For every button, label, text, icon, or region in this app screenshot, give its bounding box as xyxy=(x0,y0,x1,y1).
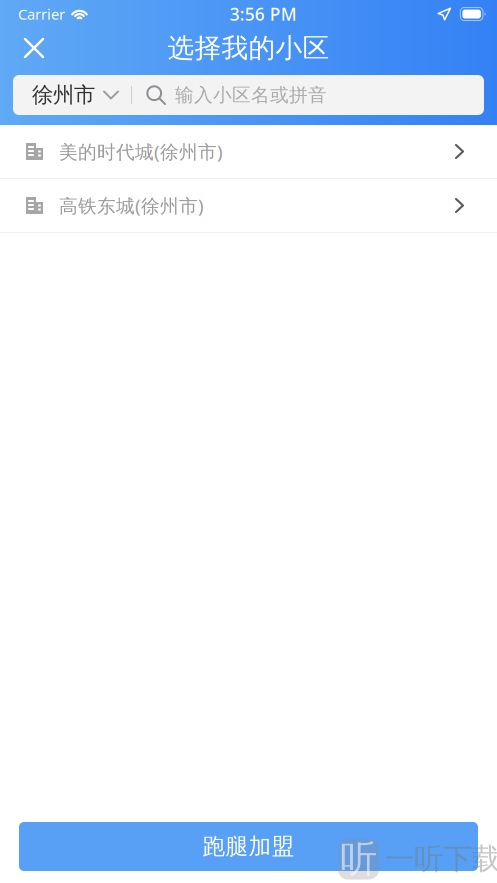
button[interactable]: 美的时代城(徐州市) xyxy=(0,125,497,179)
staticText: Carrier xyxy=(18,4,65,24)
staticText: 高铁东城(徐州市) xyxy=(59,193,204,218)
staticText: 3:56 PM xyxy=(230,2,297,25)
button[interactable]: Close xyxy=(12,26,56,70)
staticText: 一听下载 xyxy=(385,841,497,877)
button[interactable]: 高铁东城(徐州市) xyxy=(0,179,497,233)
button[interactable]: 跑腿加盟 xyxy=(19,822,478,871)
button[interactable]: 徐州市 xyxy=(13,75,131,115)
staticText: 输入小区名或拼音 xyxy=(175,83,327,106)
staticText: 跑腿加盟 xyxy=(202,833,294,860)
staticText: 选择我的小区 xyxy=(167,32,329,64)
staticText: 美的时代城(徐州市) xyxy=(59,139,223,164)
staticText: 徐州市 xyxy=(32,82,95,108)
staticText: 听 xyxy=(340,836,377,882)
